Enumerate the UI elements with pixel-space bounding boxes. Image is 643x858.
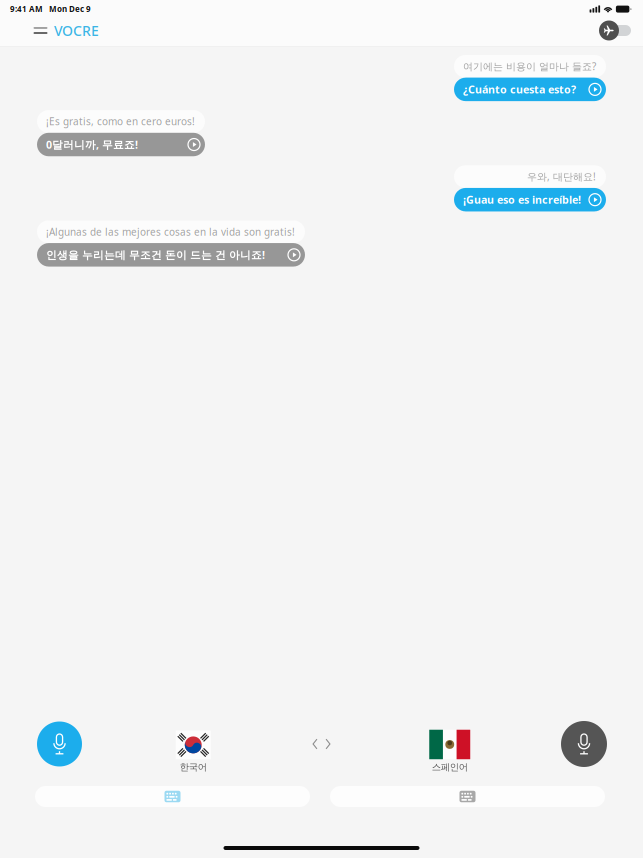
button[interactable]: 인생을 누리는데 무조건 돈이 드는 건 아니죠! — [37, 243, 305, 267]
button[interactable]: 스페인어 — [415, 715, 485, 773]
staticText: 0달러니까, 무료죠! — [46, 137, 138, 152]
button[interactable]: Swap languages — [304, 721, 338, 766]
staticText: 스페인어 — [432, 761, 468, 773]
button[interactable]: Speak Spanish — [561, 721, 607, 767]
button[interactable]: 한국어 — [158, 715, 228, 773]
button[interactable]: 0달러니까, 무료죠! — [37, 133, 205, 156]
staticText: ¡Guau eso es increíble! — [463, 192, 581, 207]
button[interactable]: ¿Cuánto cuesta esto? — [454, 78, 606, 101]
staticText: ¡Algunas de las mejores cosas en la vida… — [46, 225, 295, 238]
button[interactable]: Type in Korean — [35, 786, 310, 807]
staticText: 여기에는 비용이 얼마나 들죠? — [463, 59, 596, 73]
staticText: 9:41 AM — [10, 4, 43, 14]
staticText: ¡Es gratis, como en cero euros! — [46, 115, 195, 128]
staticText: VOCRE — [54, 21, 99, 40]
staticText: 인생을 누리는데 무조건 돈이 드는 건 아니죠! — [46, 248, 265, 262]
staticText: Mon Dec 9 — [43, 4, 91, 14]
staticText: 우와, 대단해요! — [527, 170, 596, 183]
button[interactable]: Speak Korean — [37, 721, 82, 766]
staticText: ¿Cuánto cuesta esto? — [463, 82, 576, 97]
button[interactable]: Travel mode — [599, 20, 631, 40]
staticText: 한국어 — [180, 761, 207, 773]
button[interactable]: ¡Guau eso es increíble! — [454, 188, 606, 211]
button[interactable]: Menu — [28, 15, 53, 46]
button[interactable]: Type in Spanish — [330, 786, 605, 807]
